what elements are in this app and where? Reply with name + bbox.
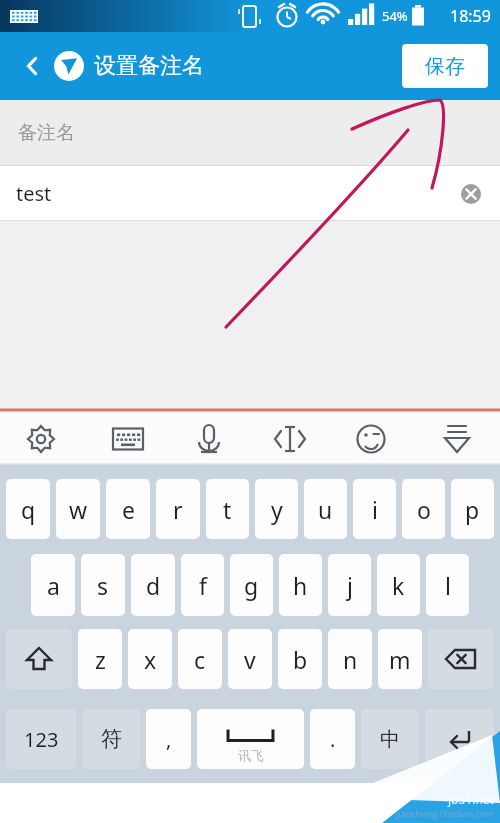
staticText: l (445, 570, 451, 601)
staticText: o (417, 494, 431, 525)
staticText: u (318, 494, 333, 525)
button[interactable]: t (206, 479, 249, 539)
button[interactable]: z (78, 629, 122, 689)
staticText: 中 (380, 727, 400, 752)
staticText: , (166, 726, 172, 753)
button[interactable]: . (310, 709, 355, 769)
button[interactable]: n (328, 629, 372, 689)
staticText: w (69, 494, 88, 525)
button[interactable]: Settings (0, 411, 84, 464)
button[interactable]: h (279, 554, 322, 616)
button[interactable]: Enter (425, 709, 494, 769)
staticText: 符 (101, 726, 122, 752)
button[interactable]: m (378, 629, 422, 689)
button[interactable]: f (181, 554, 224, 616)
staticText: i (372, 494, 378, 525)
button[interactable]: Voice input (168, 411, 251, 464)
staticText: k (392, 570, 405, 601)
button[interactable]: l (426, 554, 469, 616)
button[interactable]: y (255, 479, 298, 539)
button[interactable]: 保存 (402, 44, 488, 88)
button[interactable]: , (146, 709, 191, 769)
button[interactable]: b (278, 629, 322, 689)
button[interactable]: Emoji (334, 411, 417, 464)
button[interactable]: 符 (82, 709, 140, 769)
button[interactable]: Backspace (428, 629, 494, 689)
button[interactable]: w (56, 479, 100, 539)
button[interactable]: i (353, 479, 396, 539)
button[interactable]: d (131, 554, 175, 616)
staticText: e (122, 494, 135, 525)
staticText: t (223, 494, 232, 525)
button[interactable]: Text cursor (251, 411, 334, 464)
button[interactable]: g (230, 554, 273, 616)
button[interactable]: Keyboard layout (84, 411, 168, 464)
staticText: 保存 (425, 54, 465, 79)
staticText: test (16, 180, 52, 207)
staticText: jb51.net (448, 791, 494, 807)
staticText: b (293, 644, 308, 675)
staticText: 设置备注名 (94, 52, 204, 80)
staticText: s (97, 570, 109, 601)
staticText: . (330, 726, 336, 753)
button[interactable]: u (304, 479, 347, 539)
staticText: v (244, 644, 256, 675)
staticText: p (465, 494, 480, 525)
button[interactable]: o (402, 479, 445, 539)
staticText: f (199, 570, 207, 601)
staticText: 54% (382, 7, 408, 25)
button[interactable]: 123 (6, 709, 76, 769)
staticText: x (144, 644, 157, 675)
button[interactable]: q (6, 479, 50, 539)
staticText: a (47, 570, 60, 601)
staticText: y (271, 494, 283, 525)
button[interactable]: a (31, 554, 75, 616)
staticText: 讯飞 (238, 747, 264, 763)
button[interactable]: r (156, 479, 200, 539)
button[interactable]: c (178, 629, 222, 689)
button[interactable]: v (228, 629, 272, 689)
button[interactable]: Shift (6, 629, 72, 689)
button[interactable]: 中 (361, 709, 419, 769)
button[interactable]: Space (197, 709, 304, 769)
staticText: m (389, 644, 411, 675)
staticText: h (293, 570, 308, 601)
staticText: jiaocheng.chedian.com (396, 807, 494, 819)
button[interactable]: j (328, 554, 371, 616)
button[interactable]: Back (10, 44, 54, 88)
staticText: z (95, 644, 106, 675)
staticText: j (347, 570, 353, 601)
staticText: r (173, 494, 183, 525)
staticText: c (194, 644, 206, 675)
button[interactable]: s (81, 554, 125, 616)
button[interactable]: k (377, 554, 420, 616)
button[interactable]: p (451, 479, 494, 539)
staticText: g (244, 570, 259, 601)
button[interactable]: test (0, 166, 500, 221)
button[interactable]: Clear text (454, 177, 488, 211)
staticText: 18:59 (450, 5, 491, 27)
staticText: 123 (24, 726, 59, 753)
button[interactable]: e (106, 479, 150, 539)
button[interactable]: Hide keyboard (417, 411, 500, 464)
staticText: d (146, 570, 161, 601)
staticText: q (21, 494, 36, 525)
staticText: 备注名 (18, 121, 75, 145)
button[interactable]: x (128, 629, 172, 689)
staticText: n (343, 644, 358, 675)
